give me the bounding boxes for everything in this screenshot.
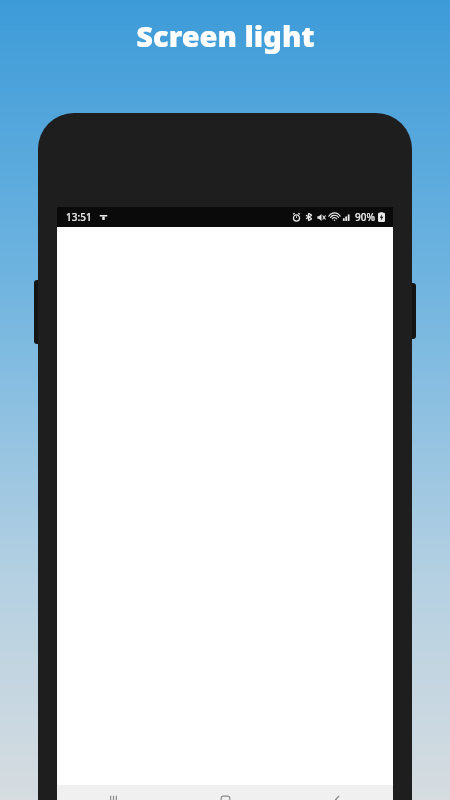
button[interactable]: Back (281, 785, 393, 800)
staticText: 90% (355, 210, 375, 224)
staticText: Screen light (136, 16, 315, 55)
button[interactable]: Home (169, 785, 281, 800)
staticText: 13:51 (66, 210, 92, 224)
button[interactable]: Recent apps (57, 785, 169, 800)
